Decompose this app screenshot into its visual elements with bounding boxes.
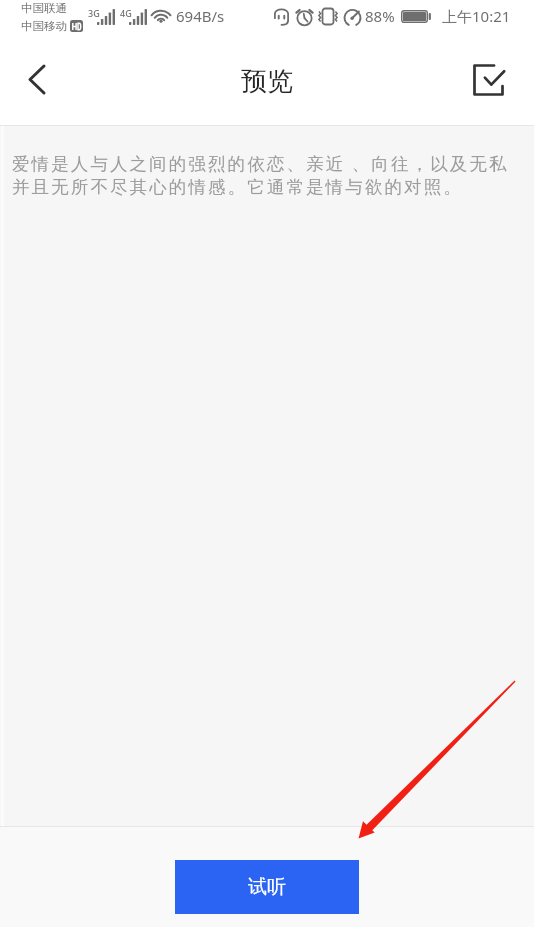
button[interactable]: 试听 xyxy=(175,860,359,914)
staticText: 4G xyxy=(120,7,132,19)
staticText: 3G xyxy=(88,7,100,19)
staticText: 中国联通 xyxy=(21,1,67,15)
button[interactable]: Confirm xyxy=(460,35,520,125)
staticText: 88% xyxy=(365,6,395,26)
staticText: 中国移动 xyxy=(21,19,67,33)
staticText: 预览 xyxy=(241,65,293,98)
staticText: 694B/s xyxy=(176,6,225,26)
button[interactable]: Back xyxy=(7,36,67,126)
staticText: 爱情是人与人之间的强烈的依恋、亲近 、向往，以及无私并且无所不尽其心的情感。它通… xyxy=(12,151,526,198)
staticText: 试听 xyxy=(248,875,286,899)
staticText: 上午10:21 xyxy=(442,6,511,26)
